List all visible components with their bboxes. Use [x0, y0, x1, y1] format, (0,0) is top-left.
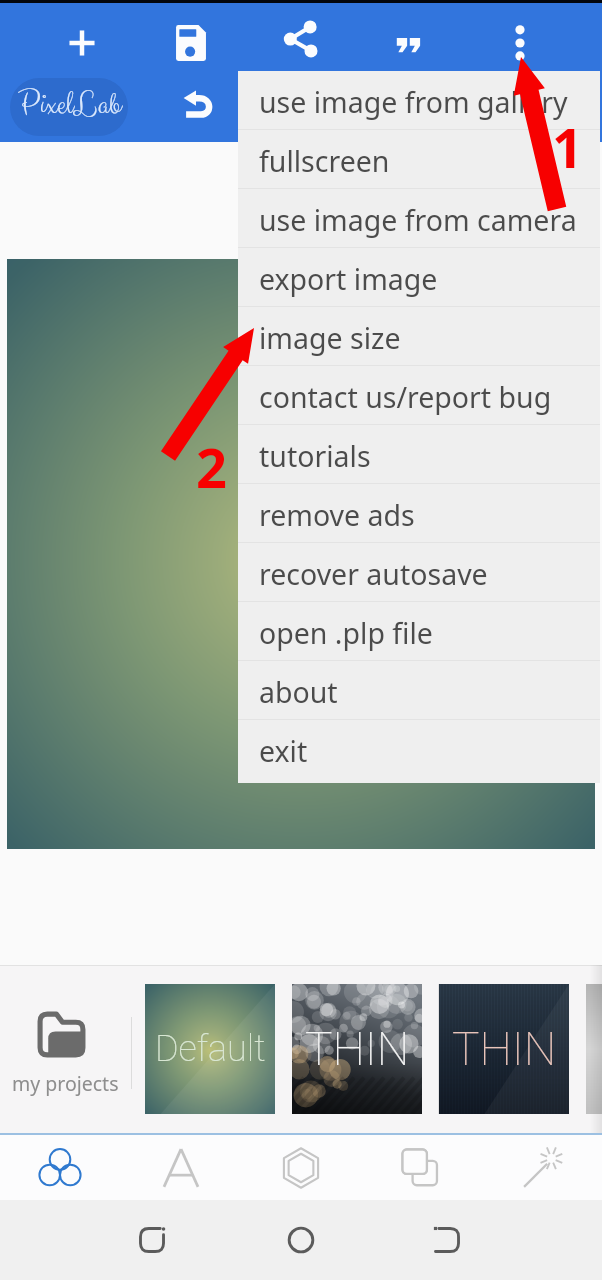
button[interactable]: Recents: [415, 1208, 479, 1272]
staticText: tutorials: [259, 437, 371, 476]
button[interactable]: THIN: [292, 984, 422, 1114]
staticText: remove ads: [259, 496, 415, 535]
staticText: fullscreen: [259, 142, 390, 181]
button[interactable]: PixelLab: [10, 78, 128, 136]
button[interactable]: Effects: [513, 1135, 573, 1200]
staticText: export image: [259, 260, 438, 299]
staticText: about: [259, 673, 338, 712]
staticText: my projects: [12, 1070, 119, 1097]
button[interactable]: exit: [238, 720, 600, 779]
button[interactable]: Duplicate: [391, 1135, 451, 1200]
staticText: 2: [196, 430, 227, 504]
staticText: exit: [259, 732, 308, 771]
button[interactable]: Default: [145, 984, 275, 1114]
button[interactable]: my projects: [0, 965, 132, 1133]
button[interactable]: THIN: [439, 984, 569, 1114]
staticText: contact us/report bug: [259, 378, 552, 417]
staticText: use image from gallery: [259, 83, 568, 122]
staticText: Default: [155, 1028, 266, 1070]
button[interactable]: Back: [120, 1208, 184, 1272]
button[interactable]: Add: [52, 13, 112, 73]
button[interactable]: remove ads: [238, 484, 600, 543]
button[interactable]: Text: [151, 1135, 211, 1200]
button[interactable]: [586, 984, 602, 1114]
button[interactable]: Shapes: [271, 1135, 331, 1200]
button[interactable]: export image: [238, 248, 600, 307]
button[interactable]: Share: [270, 13, 330, 73]
button[interactable]: tutorials: [238, 425, 600, 484]
button[interactable]: Layers: [30, 1135, 90, 1200]
button[interactable]: open .plp file: [238, 602, 600, 661]
staticText: recover autosave: [259, 555, 488, 594]
button[interactable]: More options: [490, 13, 550, 73]
button[interactable]: contact us/report bug: [238, 366, 600, 425]
button[interactable]: Home: [269, 1208, 333, 1272]
button[interactable]: fullscreen: [238, 130, 600, 189]
staticText: image size: [259, 319, 401, 358]
staticText: open .plp file: [259, 614, 433, 653]
staticText: use image from camera: [259, 201, 577, 240]
button[interactable]: Text style: [380, 13, 440, 73]
staticText: THIN: [305, 1022, 410, 1076]
staticText: THIN: [452, 1022, 557, 1076]
button[interactable]: Undo: [169, 74, 227, 132]
button[interactable]: about: [238, 661, 600, 720]
button[interactable]: Save: [161, 13, 221, 73]
button[interactable]: image size: [238, 307, 600, 366]
button[interactable]: recover autosave: [238, 543, 600, 602]
button[interactable]: use image from camera: [238, 189, 600, 248]
button[interactable]: use image from gallery: [238, 71, 600, 130]
staticText: 1: [552, 110, 583, 184]
staticText: PixelLab: [18, 84, 121, 126]
